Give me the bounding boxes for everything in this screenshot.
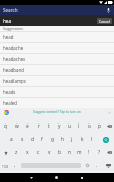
staticText: p [98,123,101,130]
staticText: k [81,136,84,143]
staticText: 7 [68,121,70,124]
button[interactable]: v [44,146,54,159]
button[interactable]: ?123 [0,159,10,172]
staticText: t [48,123,50,130]
button[interactable]: f [37,133,47,146]
button[interactable]: headache [0,42,114,53]
button[interactable]: . [92,159,102,172]
staticText: y [58,123,61,130]
button[interactable]: Emoji [82,159,92,172]
button[interactable]: n [64,146,74,159]
staticText: o [88,123,91,130]
button[interactable]: headaches [0,53,114,64]
button[interactable]: 4 [33,120,44,133]
button[interactable]: Back [27,173,36,182]
button[interactable]: m [74,146,84,159]
button[interactable]: x [22,146,33,159]
staticText: b [58,149,61,156]
button[interactable]: healed [0,97,114,108]
button[interactable]: Hide keyboard [102,159,114,172]
button[interactable]: s [17,133,27,146]
staticText: 2 [16,121,18,124]
staticText: ! [88,149,90,156]
button[interactable]: b [54,146,64,159]
button[interactable]: 5 [44,120,54,133]
staticText: . [96,162,98,169]
staticText: , [14,162,16,169]
staticText: 8 [78,121,80,124]
button[interactable]: 2 [11,120,22,133]
button[interactable]: j [67,133,77,146]
staticText: s [21,136,24,143]
staticText: ? [98,149,101,156]
staticText: Search [3,7,18,13]
staticText: q [4,123,7,130]
button[interactable]: h [57,133,67,146]
staticText: 1 [5,121,7,124]
button[interactable]: c [33,146,44,159]
staticText: hea [3,18,12,24]
button[interactable]: a [6,133,17,146]
button[interactable]: ? [94,146,104,159]
staticText: x [26,149,29,156]
staticText: headband [3,67,24,73]
button[interactable]: , [10,159,20,172]
button[interactable]: head [0,31,114,42]
button[interactable]: z [11,146,22,159]
button[interactable]: 6 [54,120,64,133]
staticText: headaches [3,56,26,62]
button[interactable]: k [77,133,87,146]
staticText: l [91,136,93,143]
button[interactable]: Home [52,173,61,182]
staticText: headache [3,45,24,51]
staticText: headlamps [3,78,26,84]
button[interactable]: Backspace [104,120,114,133]
staticText: a [10,136,13,143]
staticText: f [41,136,43,143]
button[interactable]: Search [97,133,114,146]
staticText: head [3,34,14,40]
staticText: d [31,136,34,143]
staticText: j [71,136,73,143]
button[interactable]: ! [84,146,94,159]
button[interactable]: 1 [0,120,11,133]
button[interactable]: headband [0,64,114,75]
staticText: 3 [27,121,29,124]
button[interactable]: l [87,133,97,146]
staticText: e [26,123,29,130]
button[interactable]: Shift [0,146,11,159]
button[interactable]: 7 [64,120,74,133]
staticText: z [15,149,18,156]
button[interactable]: g [47,133,57,146]
button[interactable]: d [27,133,37,146]
staticText: 5 [48,121,50,124]
staticText: w [15,123,19,130]
button[interactable]: 9 [84,120,94,133]
button[interactable]: 8 [74,120,84,133]
staticText: Suggest content? Tap to turn on [33,110,81,114]
staticText: healed [3,100,17,106]
staticText: m [77,149,82,156]
staticText: r [38,123,40,130]
staticText: n [68,149,71,156]
staticText: 4 [38,121,40,124]
staticText: 0 [98,121,100,124]
staticText: v [48,149,51,156]
button[interactable]: Voice search [103,5,114,15]
staticText: 9 [88,121,90,124]
button[interactable]: Expand [106,109,112,115]
button[interactable]: heads [0,86,114,97]
staticText: 6 [58,121,60,124]
staticText: ?123 [2,165,9,169]
button[interactable]: Cancel [97,18,112,24]
staticText: i [78,123,80,130]
button[interactable]: 0 [94,120,104,133]
button[interactable]: Backspace [104,146,114,159]
button[interactable]: 3 [22,120,33,133]
staticText: Cancel [99,19,110,24]
button[interactable]: headlamps [0,75,114,86]
button[interactable]: Google [3,109,9,115]
button[interactable]: Recent apps [77,173,86,182]
staticText: u [68,123,71,130]
